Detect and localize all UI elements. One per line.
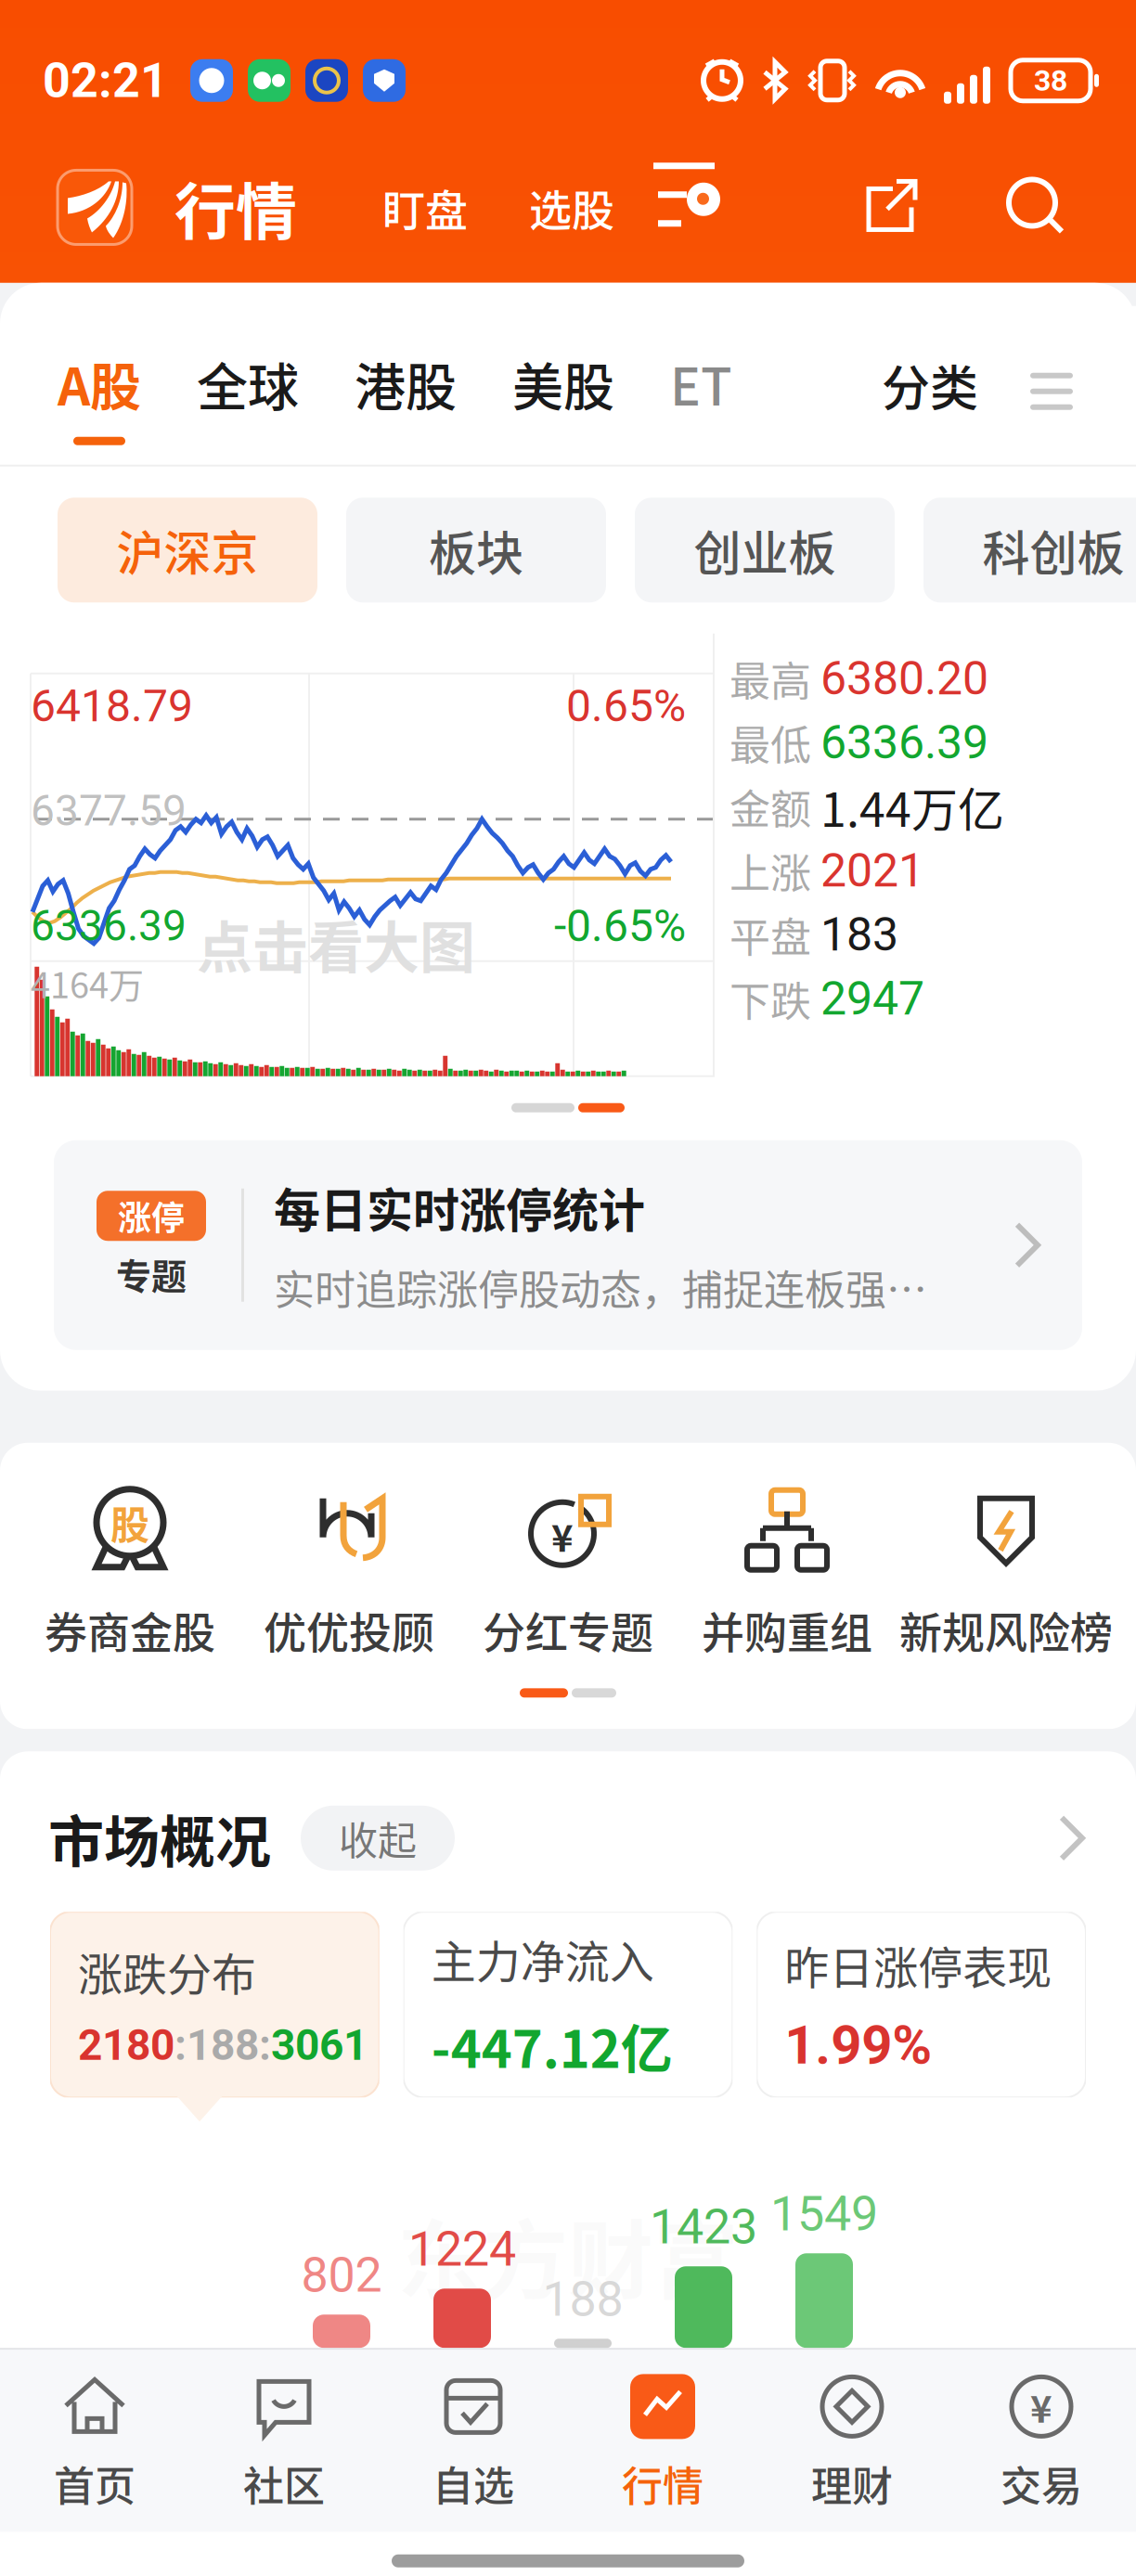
staticText: 涨跌分布 (78, 1939, 256, 2003)
staticText: 金额 (729, 777, 811, 836)
staticText: -447.12亿 (431, 2008, 673, 2083)
button[interactable]: Search (921, 176, 1067, 239)
button[interactable]: 沪深京 (58, 498, 317, 603)
button[interactable]: 涨停 (0, 1140, 1136, 1391)
staticText: -0.65% (554, 900, 686, 952)
staticText: 交易 (1000, 2454, 1082, 2513)
staticText: 4164万 (31, 957, 144, 1009)
button[interactable]: 收起 (271, 1806, 455, 1871)
button[interactable]: 科创板 (923, 498, 1136, 603)
staticText: 1.99% (785, 2014, 932, 2077)
staticText: 美股 (512, 346, 614, 420)
staticText: 38 (1034, 63, 1067, 98)
button[interactable]: A股 (30, 296, 169, 445)
button[interactable]: Share (861, 176, 921, 239)
staticText: 802 (301, 2247, 382, 2303)
button[interactable]: 涨跌分布 (50, 1912, 379, 2097)
staticText: 创业板 (694, 516, 836, 584)
button[interactable]: ¥ (458, 1484, 678, 1660)
staticText: 6336.39 (31, 901, 187, 951)
staticText: 东方财富 (397, 2193, 739, 2316)
staticText: 科创板 (982, 516, 1124, 584)
button[interactable]: 创业板 (635, 498, 895, 603)
staticText: 6418.79 (31, 680, 193, 732)
staticText: 首页 (54, 2454, 136, 2513)
staticText: 盯盘 (382, 176, 468, 238)
button[interactable]: 优优投顾 (239, 1484, 458, 1660)
staticText: 2021 (820, 844, 924, 898)
staticText: 6380.20 (820, 651, 988, 706)
staticText: 最低 (729, 713, 811, 772)
staticText: 实时追踪涨停股动态，捕捉连板强… (274, 1257, 927, 1317)
button[interactable]: Filter settings (650, 162, 720, 233)
staticText: A股 (58, 346, 141, 420)
button[interactable]: 自选 (379, 2369, 568, 2513)
staticText: 券商金股 (45, 1599, 215, 1660)
button[interactable]: 分类 (867, 296, 978, 451)
staticText: 平盘 (729, 905, 811, 964)
button[interactable]: Menu (978, 306, 1136, 442)
staticText: 选股 (529, 176, 614, 238)
staticText: 3061 (271, 2020, 368, 2070)
staticText: 行情 (174, 163, 297, 252)
staticText: ET (670, 346, 732, 420)
staticText: 分类 (882, 350, 978, 420)
staticText: 新规风险榜 (899, 1599, 1113, 1660)
staticText: 1.44万亿 (820, 773, 1004, 840)
staticText: 2947 (820, 972, 924, 1026)
button[interactable]: 港股 (327, 296, 484, 445)
staticText: 主力净流入 (431, 1926, 654, 1991)
button[interactable]: 全球 (169, 296, 327, 445)
button[interactable]: 美股 (484, 296, 642, 445)
staticText: 优优投顾 (264, 1599, 434, 1660)
staticText: 市场概况 (48, 1798, 271, 1878)
staticText: 02:21 (43, 52, 168, 109)
button[interactable]: ET (642, 296, 760, 445)
button[interactable]: 股 (20, 1484, 239, 1660)
button[interactable]: 理财 (757, 2369, 947, 2513)
staticText: 社区 (243, 2454, 325, 2513)
button[interactable]: 板块 (346, 498, 606, 603)
button[interactable]: 昨日涨停表现 (757, 1912, 1086, 2097)
staticText: 全球 (197, 346, 299, 420)
button[interactable]: 主力净流入 (403, 1912, 733, 2097)
button[interactable]: 盯盘 (297, 160, 468, 255)
staticText: 188 (542, 2271, 623, 2327)
staticText: 2180 (78, 2020, 174, 2070)
staticText: ¥ (1030, 2380, 1052, 2433)
staticText: 分红专题 (483, 1599, 653, 1660)
staticText: 1224 (408, 2221, 516, 2277)
button[interactable]: 并购重组 (678, 1484, 897, 1660)
staticText: 昨日涨停表现 (785, 1932, 1052, 1997)
button[interactable]: 新规风险榜 (897, 1484, 1116, 1660)
staticText: 188 (187, 2020, 259, 2070)
staticText: 自选 (432, 2454, 514, 2513)
staticText: 专题 (116, 1248, 187, 1299)
button[interactable]: 首页 (0, 2369, 189, 2513)
button[interactable]: 行情 (568, 2369, 757, 2513)
staticText: 6336.39 (820, 715, 988, 770)
button[interactable]: 选股 (468, 160, 614, 255)
staticText: 1423 (650, 2199, 757, 2255)
staticText: 183 (820, 908, 898, 962)
button[interactable]: 社区 (189, 2369, 379, 2513)
button[interactable]: ¥ (947, 2369, 1136, 2513)
staticText: 下跌 (729, 969, 811, 1028)
staticText: 理财 (811, 2454, 893, 2513)
staticText: ¥ (551, 1509, 574, 1562)
staticText: 最高 (729, 649, 811, 708)
staticText: : (174, 2020, 187, 2070)
staticText: 沪深京 (116, 516, 258, 584)
staticText: 股 (110, 1494, 149, 1551)
staticText: 1549 (770, 2186, 878, 2242)
staticText: 每日实时涨停统计 (274, 1174, 645, 1241)
staticText: 6377.59 (31, 786, 187, 836)
staticText: 港股 (355, 346, 457, 420)
staticText: 涨停 (118, 1192, 185, 1240)
staticText: 上涨 (729, 841, 811, 900)
staticText: 0.65% (566, 680, 686, 732)
staticText: : (259, 2020, 271, 2070)
staticText: 点击看大图 (197, 904, 475, 984)
staticText: 并购重组 (702, 1599, 872, 1660)
staticText: 行情 (622, 2454, 704, 2513)
